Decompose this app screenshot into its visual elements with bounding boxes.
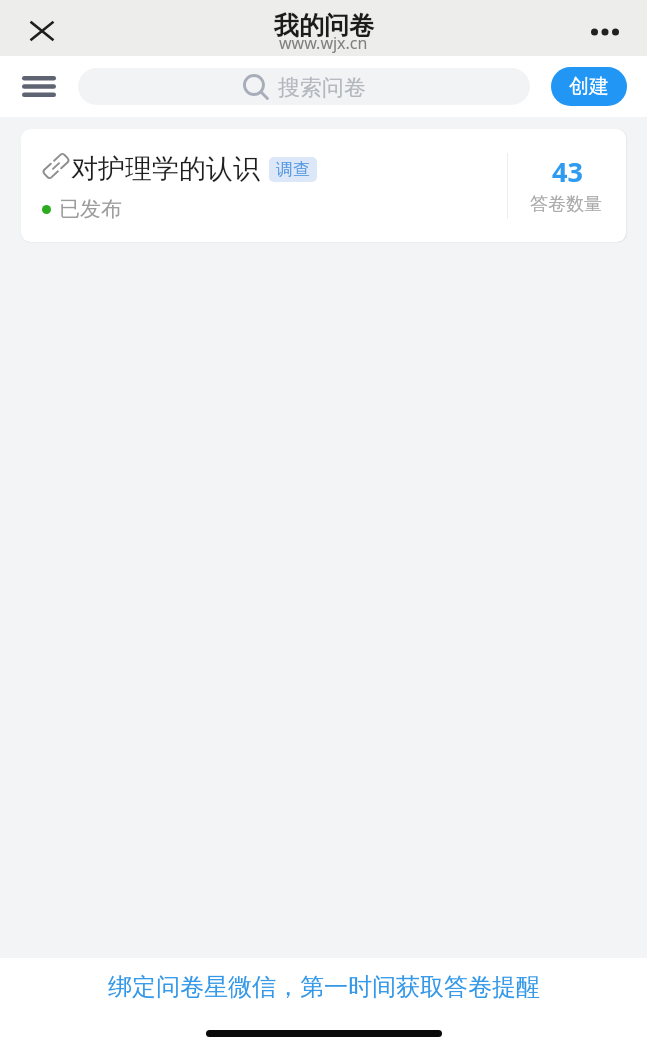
staticText: 43: [552, 153, 583, 190]
button[interactable]: Menu: [12, 64, 66, 109]
button[interactable]: 绑定问卷星微信，第一时间获取答卷提醒: [98, 967, 550, 1007]
button[interactable]: More options: [582, 8, 628, 54]
staticText: 已发布: [59, 196, 122, 222]
staticText: 答卷数量: [530, 193, 602, 216]
button[interactable]: 对护理学的认识: [21, 129, 626, 242]
staticText: 创建: [569, 74, 609, 99]
staticText: 绑定问卷星微信，第一时间获取答卷提醒: [108, 972, 540, 1002]
staticText: 搜索问卷: [278, 74, 366, 102]
button[interactable]: Close: [20, 8, 64, 52]
button[interactable]: 搜索问卷: [78, 68, 530, 105]
staticText: www.wjx.cn: [279, 32, 368, 54]
button[interactable]: 创建: [551, 67, 627, 106]
staticText: 调查: [276, 159, 310, 180]
staticText: 我的问卷: [274, 10, 374, 41]
staticText: 对护理学的认识: [71, 152, 260, 186]
